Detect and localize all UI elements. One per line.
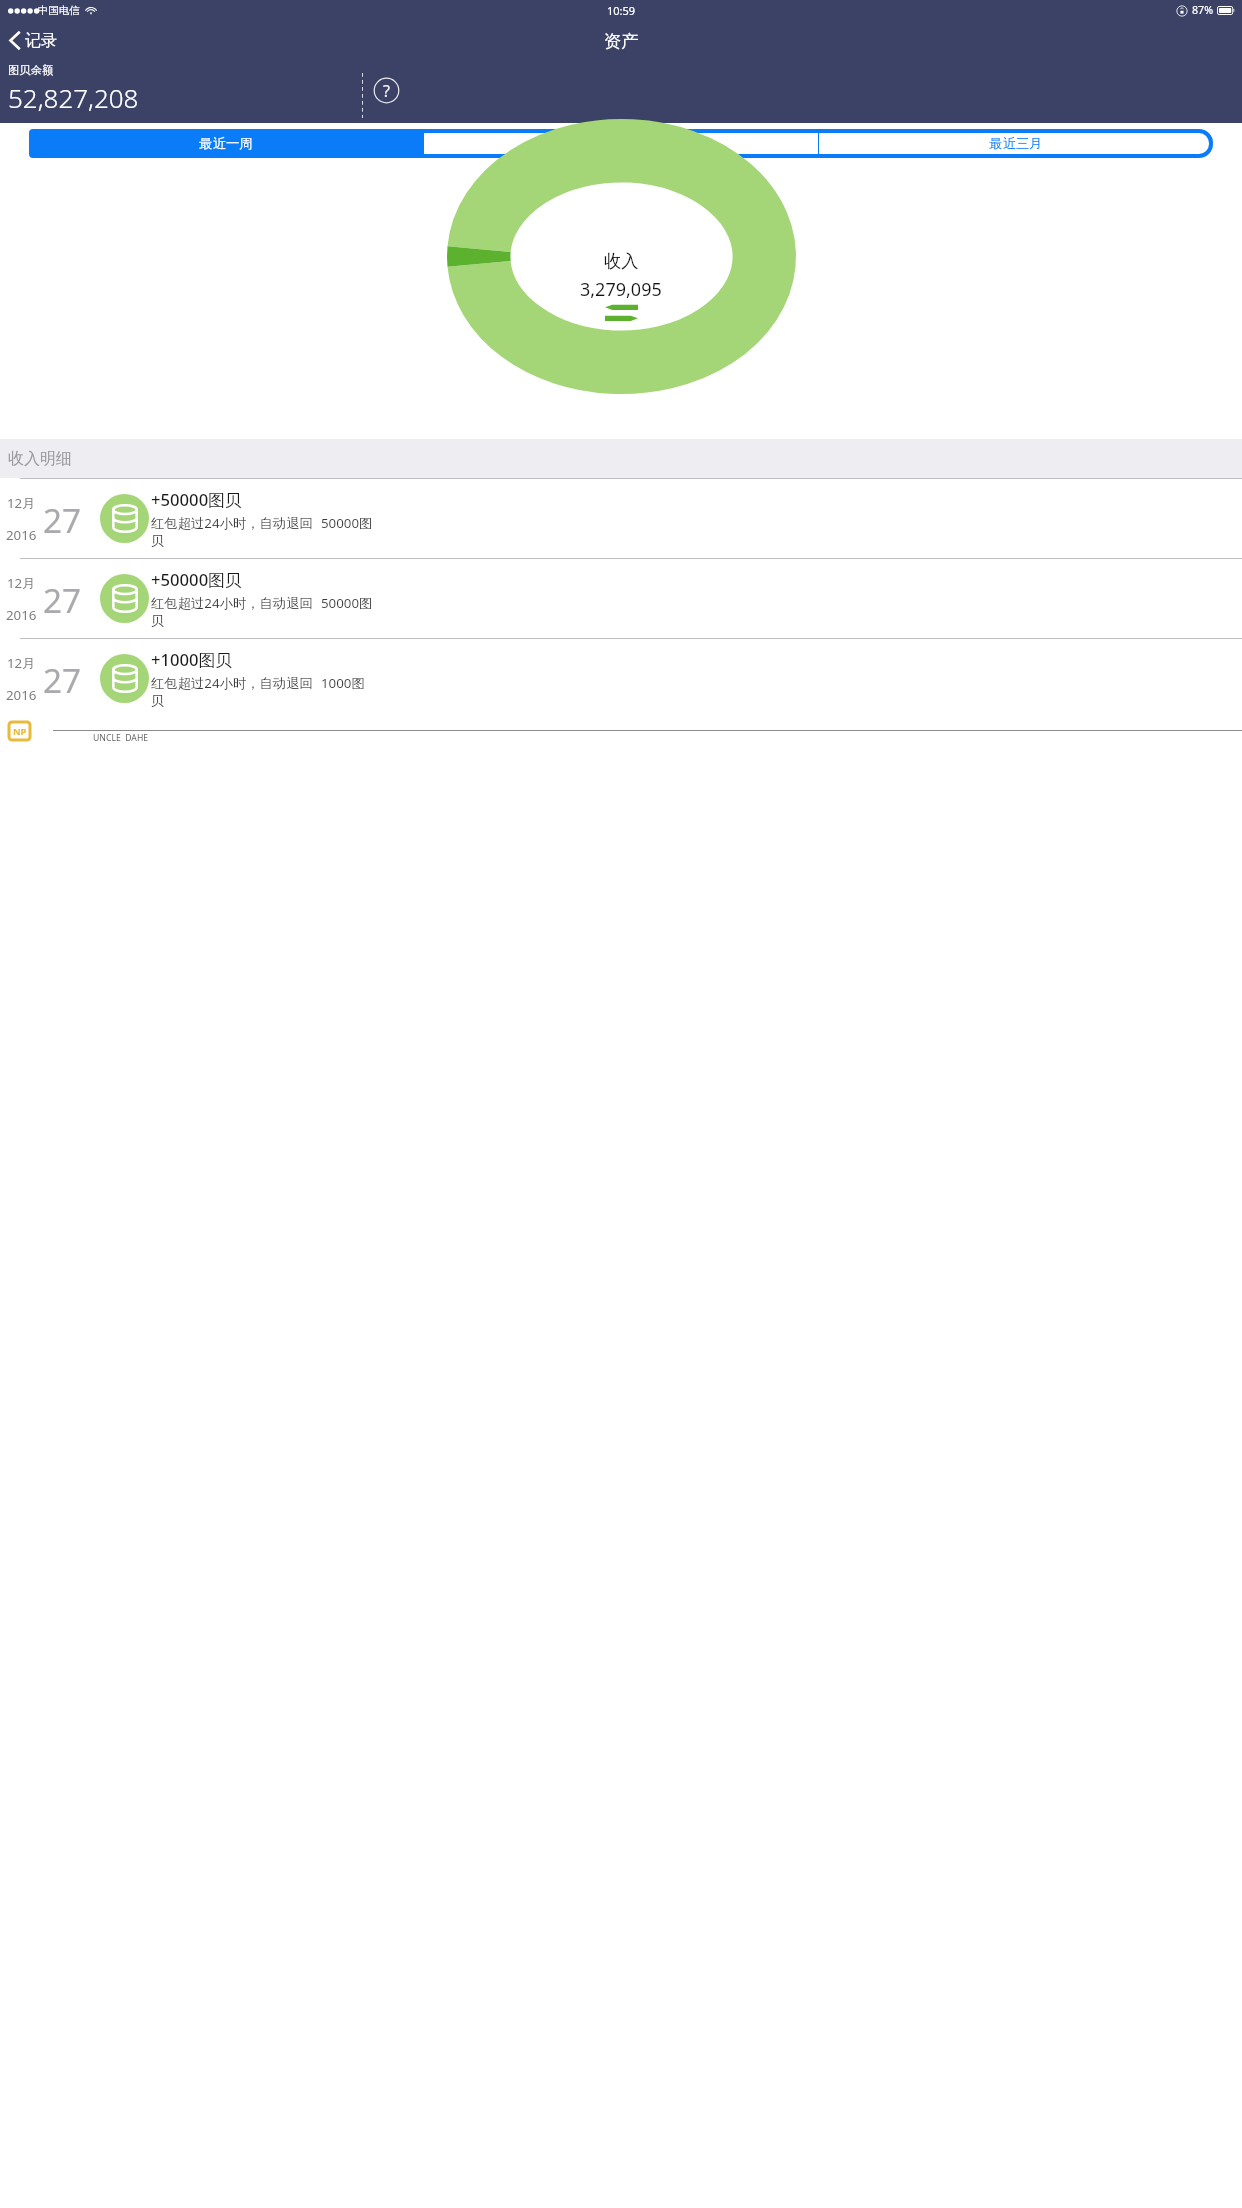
staticText: 2016 [6, 606, 37, 624]
staticText: 收入明细 [8, 449, 72, 469]
staticText: 27 [43, 577, 82, 622]
staticText: 27 [43, 657, 82, 702]
button[interactable]: 12月 [0, 479, 1242, 558]
staticText: 12月 [7, 574, 36, 592]
staticText: 贝 [151, 692, 165, 709]
button[interactable]: 最近三月 [819, 129, 1213, 158]
staticText: 红包超过24小时，自动退回 [151, 594, 313, 612]
staticText: 资产 [604, 30, 639, 52]
staticText: 红包超过24小时，自动退回 [151, 514, 313, 532]
staticText: 贝 [151, 532, 165, 549]
staticText: 12月 [7, 654, 36, 672]
staticText: 3,279,095 [580, 277, 662, 302]
button[interactable]: 最近一周 [29, 129, 423, 158]
button[interactable]: 12月 [0, 639, 1242, 718]
staticText: 2016 [6, 526, 37, 544]
staticText: 10:59 [607, 3, 636, 18]
staticText: 27 [43, 497, 82, 542]
staticText: UNCLE DAHE [93, 732, 149, 744]
staticText: 52,827,208 [8, 80, 139, 115]
staticText: +1000图贝 [151, 648, 232, 671]
staticText: 中国电信 [38, 4, 80, 17]
staticText: +50000图贝 [151, 568, 242, 591]
staticText: 红包超过24小时，自动退回 [151, 674, 313, 692]
staticText: NP [13, 725, 27, 738]
button[interactable]: 最近一月 [424, 129, 818, 158]
button[interactable]: Help [373, 77, 400, 104]
staticText: 最近三月 [989, 135, 1043, 152]
staticText: 12月 [7, 494, 36, 512]
button[interactable]: 12月 [0, 559, 1242, 638]
staticText: 50000图 [321, 594, 373, 612]
staticText: 记录 [25, 31, 57, 51]
staticText: 1000图 [321, 674, 365, 692]
staticText: +50000图贝 [151, 488, 242, 511]
staticText: ? [383, 80, 390, 102]
staticText: 贝 [151, 612, 165, 629]
staticText: 最近一周 [199, 135, 253, 152]
button[interactable]: 记录 [0, 25, 66, 56]
staticText: 50000图 [321, 514, 373, 532]
staticText: 2016 [6, 686, 37, 704]
staticText: 图贝余额 [8, 63, 54, 77]
staticText: 87% [1192, 3, 1214, 18]
staticText: 收入 [604, 250, 639, 272]
